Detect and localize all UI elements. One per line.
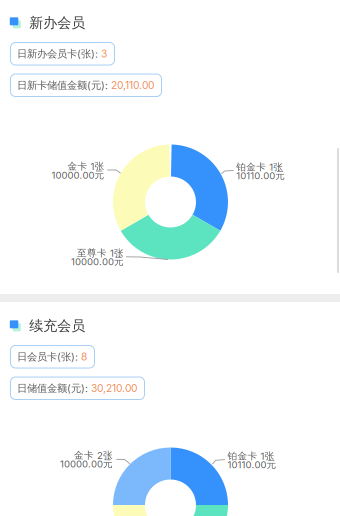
staticText: 10000.00元 bbox=[71, 256, 124, 268]
staticText: 日储值金额(元): bbox=[17, 382, 91, 395]
staticText: 10110.00元 bbox=[236, 170, 285, 182]
button[interactable]: 日新卡储值金额(元): bbox=[10, 74, 161, 96]
staticText: 10000.00元 bbox=[60, 458, 113, 470]
staticText: 续充会员 bbox=[29, 317, 85, 335]
button[interactable]: 日新办会员卡(张): bbox=[10, 42, 114, 65]
staticText: 日新办会员卡(张): bbox=[17, 47, 101, 60]
button[interactable]: 日储值金额(元): bbox=[10, 377, 144, 399]
staticText: 30,210.00 bbox=[91, 382, 137, 394]
staticText: 金卡 1张 bbox=[67, 160, 104, 172]
staticText: 新办会员 bbox=[29, 14, 85, 32]
staticText: 10000.00元 bbox=[51, 169, 104, 181]
staticText: 日会员卡(张): bbox=[17, 350, 81, 363]
staticText: 至尊卡 1张 bbox=[77, 247, 124, 259]
staticText: 20,110.00 bbox=[111, 79, 154, 91]
button[interactable]: 日会员卡(张): bbox=[10, 345, 94, 368]
staticText: 铂金卡 1张 bbox=[236, 161, 283, 173]
staticText: 10110.00元 bbox=[227, 459, 276, 471]
staticText: 8 bbox=[81, 350, 87, 363]
staticText: 金卡 2张 bbox=[74, 449, 113, 461]
staticText: 日新卡储值金额(元): bbox=[17, 79, 111, 92]
staticText: 3 bbox=[101, 47, 107, 60]
staticText: 铂金卡 1张 bbox=[227, 450, 274, 462]
